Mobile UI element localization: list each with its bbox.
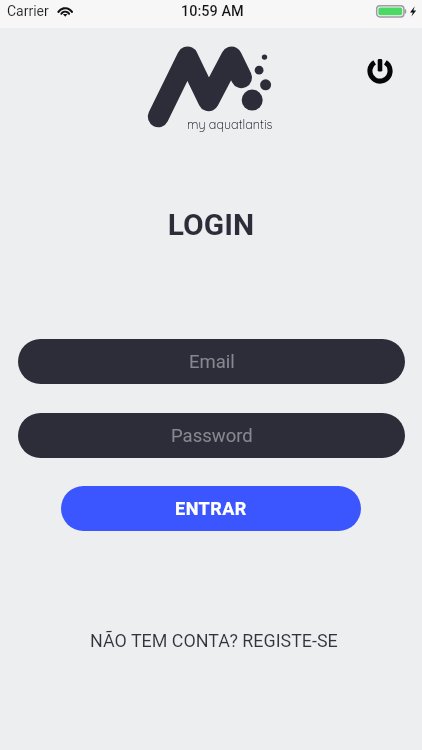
staticText: Password bbox=[171, 425, 253, 447]
staticText: LOGIN bbox=[0, 207, 422, 242]
staticText: Email bbox=[189, 351, 235, 373]
staticText: Carrier bbox=[7, 3, 49, 19]
button[interactable]: Password bbox=[18, 413, 405, 458]
button[interactable]: ENTRAR bbox=[61, 486, 361, 531]
button[interactable]: NÃO TEM CONTA? REGISTE-SE bbox=[3, 626, 422, 654]
staticText: 10:59 AM bbox=[181, 3, 244, 20]
staticText: ENTRAR bbox=[175, 498, 247, 519]
button[interactable]: Power bbox=[362, 53, 398, 89]
staticText: NÃO TEM CONTA? REGISTE-SE bbox=[90, 630, 338, 651]
button[interactable]: Email bbox=[18, 339, 405, 384]
